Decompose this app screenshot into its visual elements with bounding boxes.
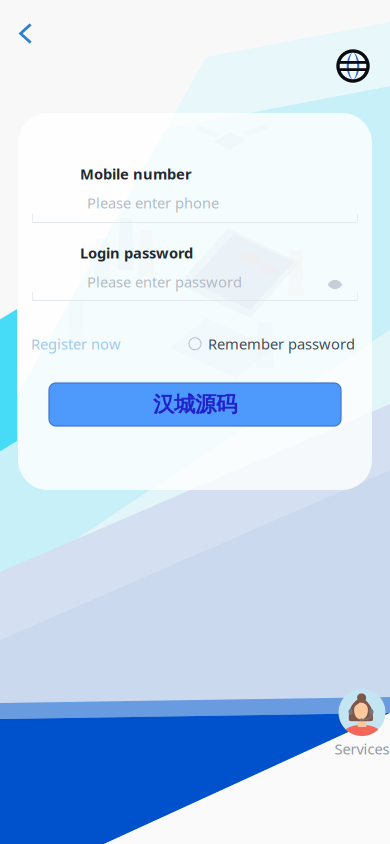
button[interactable]: Register now [27,328,125,359]
button[interactable]: 汉城源码 [49,383,341,426]
staticText: Please enter phone [87,193,219,212]
button[interactable]: Remember password [189,328,355,359]
button[interactable]: Show password [318,269,352,300]
staticText: Login password [80,243,193,262]
staticText: Mobile number [80,164,192,183]
staticText: 汉城源码 [153,391,237,418]
staticText: Remember password [208,334,355,353]
staticText: Register now [31,334,121,353]
button[interactable]: Back [5,10,46,57]
staticText: Services [334,739,389,758]
button[interactable]: Services [332,689,390,758]
button[interactable]: Language [328,41,378,91]
staticText: Please enter password [87,272,242,291]
